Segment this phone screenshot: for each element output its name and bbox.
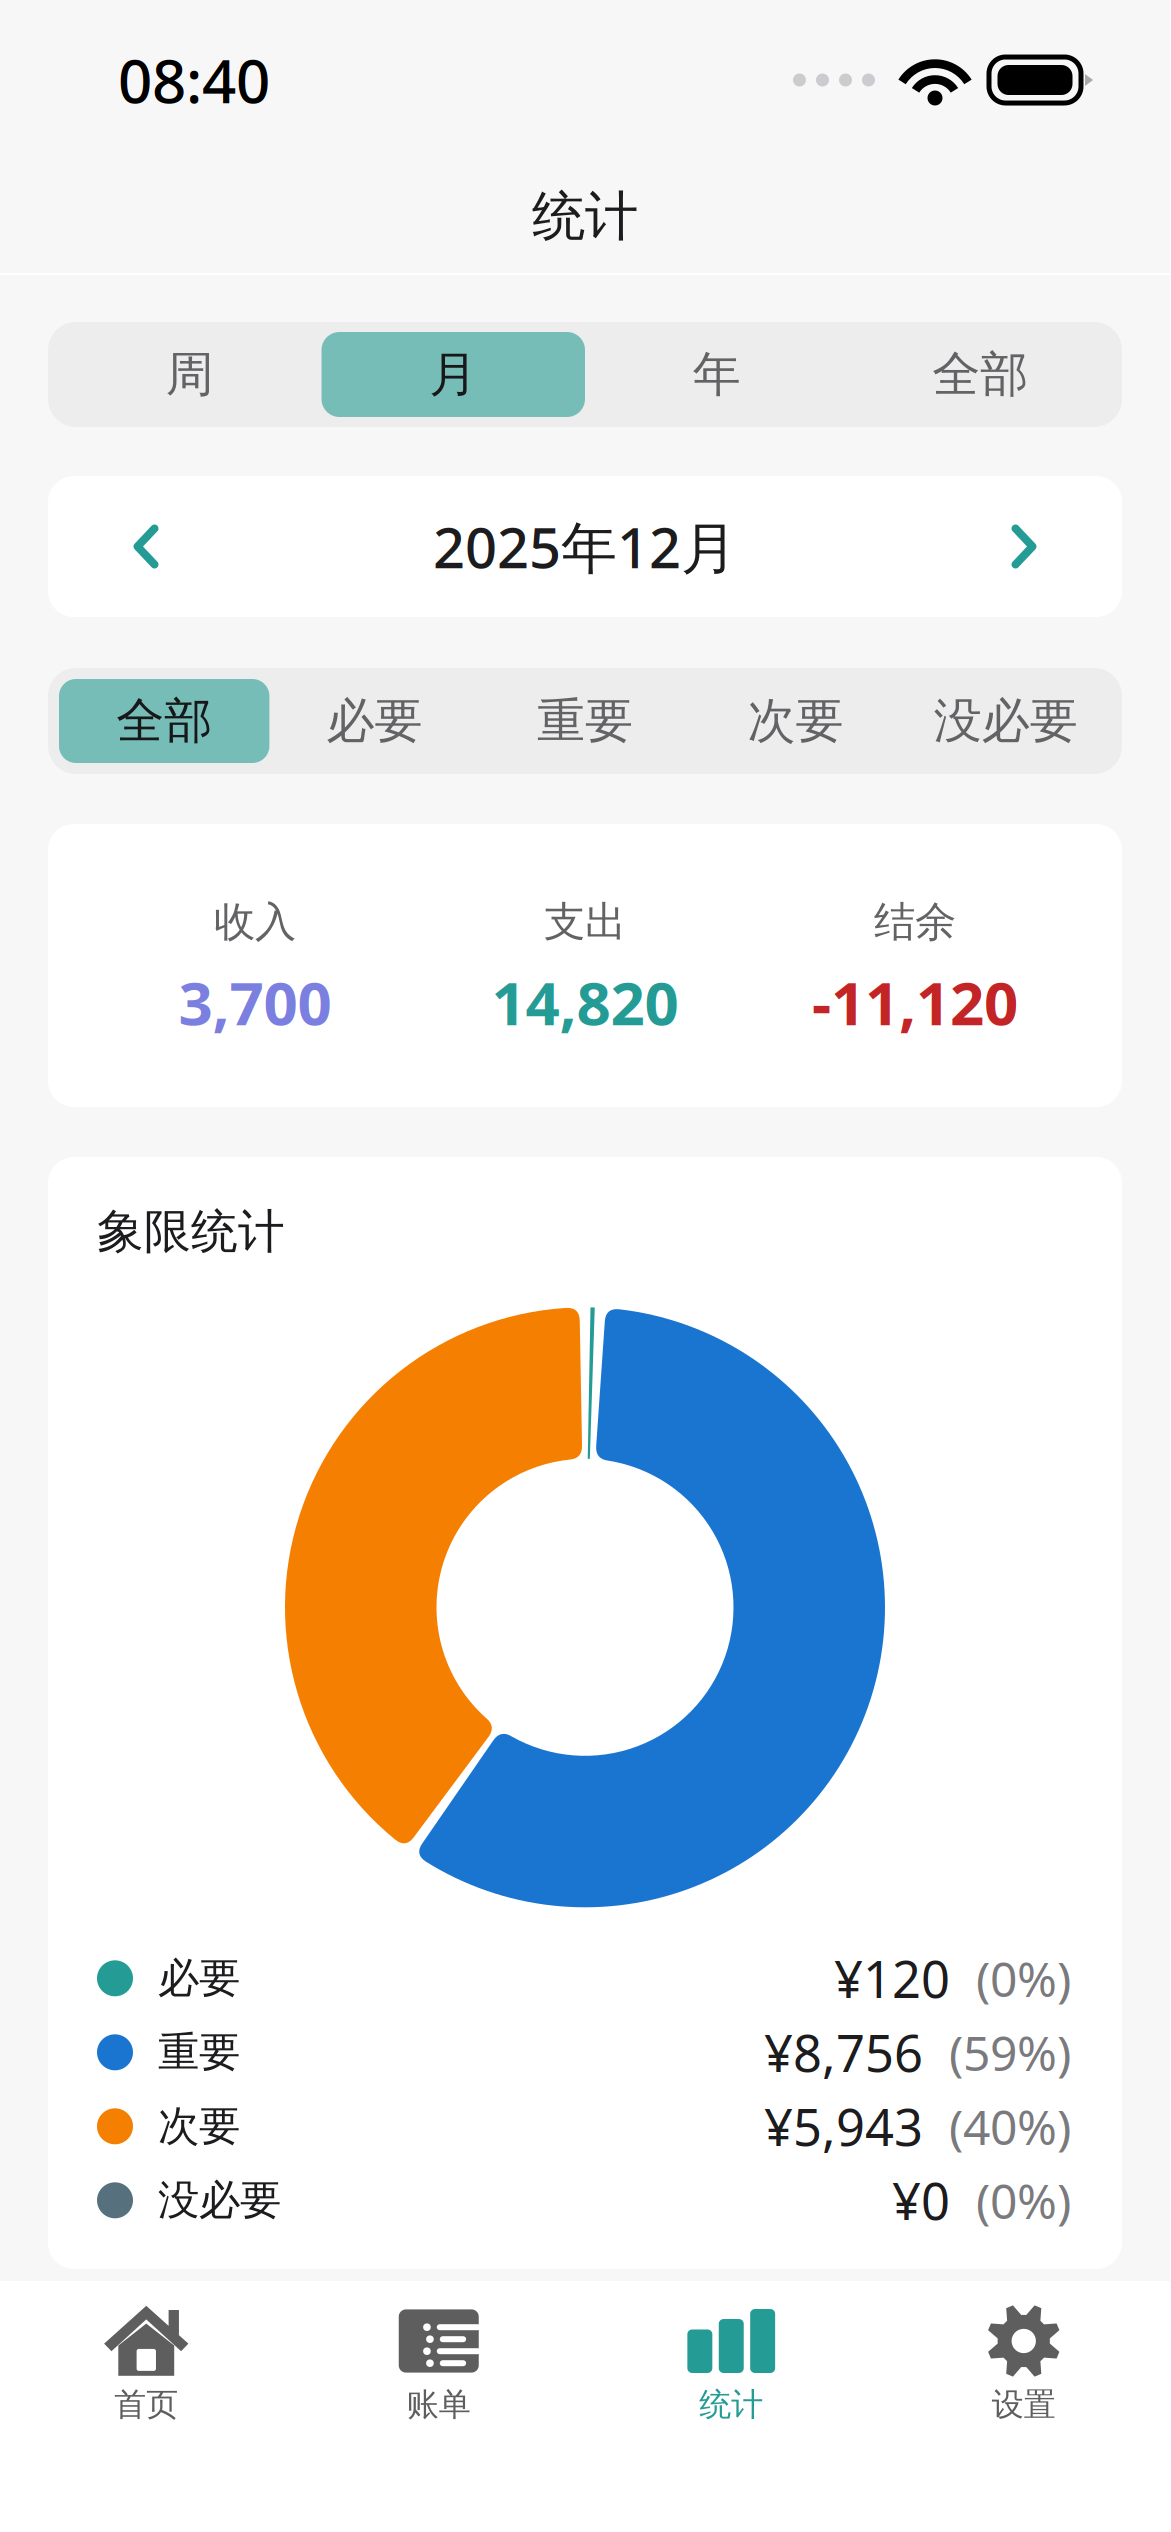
staticText: 重要 <box>537 691 633 750</box>
staticText: ¥0 <box>892 2167 950 2234</box>
staticText: ¥8,756 <box>764 2019 923 2086</box>
staticText: (0%) <box>976 1946 1071 2010</box>
staticText: 必要 <box>327 691 423 750</box>
staticText: 统计 <box>532 184 638 249</box>
staticText: 14,820 <box>491 962 678 1042</box>
staticText: 2025年12月 <box>433 509 737 584</box>
button[interactable]: 账单 <box>292 2305 585 2432</box>
button[interactable]: 上一个月 <box>48 476 244 617</box>
staticText: -11,120 <box>812 962 1018 1042</box>
staticText: 设置 <box>992 2385 1056 2424</box>
button[interactable]: 周 <box>58 332 321 417</box>
staticText: (40%) <box>949 2094 1071 2158</box>
staticText: 结余 <box>874 897 956 947</box>
staticText: 周 <box>166 345 214 404</box>
staticText: 重要 <box>158 2027 240 2078</box>
staticText: 支出 <box>544 897 626 947</box>
staticText: 全部 <box>932 345 1028 404</box>
button[interactable]: 月 <box>321 332 585 417</box>
button[interactable]: 年 <box>585 332 848 417</box>
button[interactable]: 全部 <box>59 679 269 763</box>
button[interactable]: 设置 <box>877 2305 1170 2432</box>
staticText: 必要 <box>158 1953 240 2004</box>
staticText: 08:40 <box>118 40 270 120</box>
staticText: 象限统计 <box>97 1203 285 1260</box>
button[interactable]: 必要 <box>269 679 480 763</box>
button[interactable]: 首页 <box>0 2305 292 2432</box>
button[interactable]: 没必要 <box>901 679 1111 763</box>
button[interactable]: 统计 <box>585 2305 877 2432</box>
staticText: ¥5,943 <box>764 2093 923 2160</box>
staticText: 3,700 <box>178 962 331 1042</box>
staticText: 次要 <box>747 691 843 750</box>
staticText: 全部 <box>116 691 212 750</box>
staticText: (0%) <box>976 2168 1071 2232</box>
staticText: 收入 <box>214 897 296 947</box>
staticText: 统计 <box>699 2385 763 2424</box>
staticText: ¥120 <box>834 1945 950 2012</box>
staticText: (59%) <box>949 2020 1071 2084</box>
button[interactable]: 全部 <box>848 332 1112 417</box>
staticText: 年 <box>693 345 741 404</box>
button[interactable]: 下一个月 <box>926 476 1122 617</box>
staticText: 没必要 <box>934 691 1078 750</box>
staticText: 没必要 <box>158 2175 281 2226</box>
staticText: 次要 <box>158 2101 240 2152</box>
staticText: 月 <box>429 345 477 404</box>
button[interactable]: 重要 <box>480 679 690 763</box>
staticText: 账单 <box>407 2385 471 2424</box>
button[interactable]: 次要 <box>690 679 901 763</box>
staticText: 首页 <box>114 2385 178 2424</box>
